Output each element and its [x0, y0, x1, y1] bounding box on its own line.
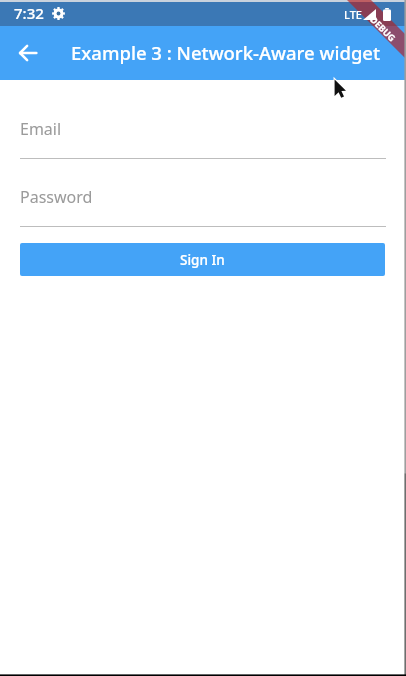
staticText: LTE [344, 7, 362, 22]
button[interactable]: Sign In [20, 243, 385, 276]
button[interactable]: Back [10, 35, 46, 71]
staticText: Example 3 : Network-Aware widget [71, 40, 381, 65]
staticText: Email [20, 118, 62, 140]
button[interactable]: Password [20, 186, 386, 227]
button[interactable]: Email [20, 118, 386, 159]
staticText: Password [20, 186, 93, 208]
staticText: 7:32 [14, 3, 44, 23]
staticText: DEBUG [368, 13, 399, 44]
staticText: Sign In [180, 251, 225, 269]
